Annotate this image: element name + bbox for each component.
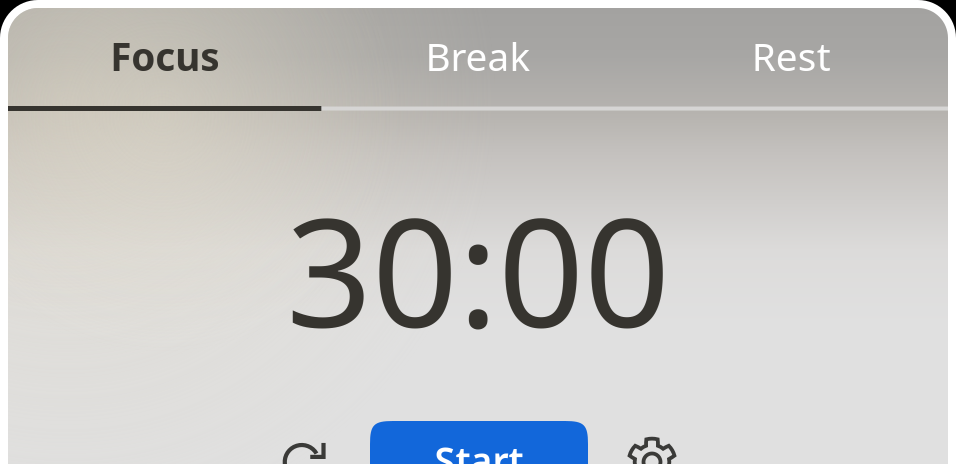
staticText: 30:00 [286,169,670,369]
button[interactable]: Settings [608,418,696,464]
button[interactable]: Start [370,421,588,464]
staticText: Break [425,30,530,82]
button[interactable]: Break [321,8,635,106]
button[interactable]: Focus [8,8,321,106]
button[interactable]: Reset [260,418,348,464]
button[interactable]: Rest [635,8,948,106]
staticText: Focus [110,30,219,82]
staticText: Start [434,435,523,464]
staticText: Rest [752,30,831,82]
